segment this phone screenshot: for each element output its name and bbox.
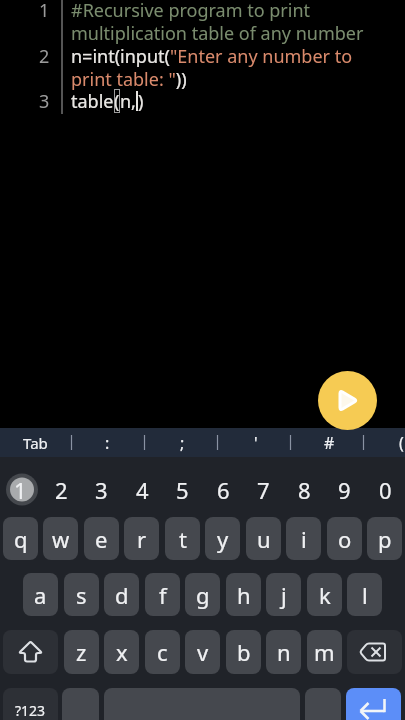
staticText: 3	[39, 89, 50, 113]
staticText: )	[138, 89, 144, 113]
button[interactable]: ?123	[3, 688, 58, 720]
button[interactable]: j	[266, 573, 301, 616]
button[interactable]: f	[145, 573, 180, 616]
staticText: o	[338, 524, 352, 554]
button[interactable]: o	[327, 517, 362, 560]
staticText: b	[237, 637, 251, 667]
button[interactable]: d	[104, 573, 139, 616]
staticText: q	[14, 524, 28, 554]
button[interactable]: s	[64, 573, 99, 616]
staticText: m	[314, 637, 335, 667]
button[interactable]: g	[185, 573, 220, 616]
button[interactable]: v	[185, 630, 220, 674]
button[interactable]: x	[104, 630, 139, 674]
staticText: k	[319, 580, 331, 610]
button[interactable]: :	[77, 428, 137, 457]
button[interactable]: n	[266, 630, 301, 674]
staticText: multiplication table of any number	[71, 21, 364, 45]
staticText: u	[257, 524, 271, 554]
button[interactable]	[62, 688, 99, 720]
staticText: t	[179, 524, 187, 554]
staticText: e	[95, 524, 108, 554]
staticText: 2	[39, 44, 50, 68]
staticText: Tab	[23, 433, 48, 453]
button[interactable]: q	[3, 517, 38, 560]
button[interactable]	[346, 688, 401, 720]
button[interactable]: 6	[203, 473, 244, 507]
staticText: y	[217, 524, 229, 554]
button[interactable]	[305, 688, 341, 720]
button[interactable]: 3	[81, 473, 122, 507]
button[interactable]: 9	[324, 473, 365, 507]
staticText: ;	[180, 432, 185, 454]
button[interactable]	[318, 371, 377, 430]
staticText: j	[281, 580, 287, 610]
button[interactable]: Tab	[5, 428, 65, 457]
staticText: 4	[136, 475, 149, 505]
staticText: c	[157, 637, 168, 667]
staticText: x	[116, 637, 128, 667]
staticText: 9	[338, 475, 351, 505]
staticText: (	[114, 89, 120, 113]
button[interactable]: m	[307, 630, 342, 674]
button[interactable]: r	[124, 517, 159, 560]
button[interactable]: l	[347, 573, 382, 616]
button[interactable]: w	[43, 517, 78, 560]
staticText: '	[254, 432, 258, 454]
staticText: print table: "))	[71, 67, 187, 91]
button[interactable]: y	[205, 517, 240, 560]
staticText: 7	[257, 475, 270, 505]
button[interactable]: 4	[122, 473, 163, 507]
staticText: r	[137, 524, 147, 554]
button[interactable]	[347, 630, 402, 674]
button[interactable]: 2	[41, 473, 82, 507]
button[interactable]: h	[226, 573, 261, 616]
staticText: n,	[120, 89, 136, 113]
button[interactable]: #	[299, 428, 359, 457]
staticText: i	[301, 524, 307, 554]
button[interactable]: c	[145, 630, 180, 674]
staticText: #Recursive program to print	[71, 0, 311, 22]
button[interactable]: u	[246, 517, 281, 560]
button[interactable]: 0	[365, 473, 405, 507]
staticText: 5	[176, 475, 189, 505]
button[interactable]: z	[64, 630, 99, 674]
button[interactable]: i	[286, 517, 321, 560]
staticText: ?123	[15, 701, 46, 720]
staticText: 2	[55, 475, 68, 505]
staticText: l	[362, 580, 368, 610]
staticText: 6	[217, 475, 230, 505]
staticText: n=int(input("Enter any number to	[71, 44, 353, 68]
button[interactable]: b	[226, 630, 261, 674]
staticText: h	[237, 580, 251, 610]
staticText: f	[159, 580, 167, 610]
button[interactable]: 5	[162, 473, 203, 507]
button[interactable]: 7	[243, 473, 284, 507]
button[interactable]: 8	[284, 473, 325, 507]
button[interactable]: a	[23, 573, 58, 616]
staticText: table	[71, 89, 114, 113]
button[interactable]: '	[226, 428, 286, 457]
staticText: 1	[39, 0, 50, 22]
button[interactable]	[3, 630, 58, 674]
staticText: 1	[14, 475, 27, 505]
button[interactable]: t	[165, 517, 200, 560]
staticText: a	[34, 580, 47, 610]
button[interactable]: (	[371, 428, 405, 457]
button[interactable]: ;	[152, 428, 212, 457]
button[interactable]: k	[307, 573, 342, 616]
staticText: #	[324, 432, 335, 454]
staticText: n	[277, 637, 291, 667]
staticText: w	[52, 524, 70, 554]
button[interactable]: p	[367, 517, 402, 560]
staticText: s	[76, 580, 87, 610]
button[interactable]: 1	[0, 473, 41, 507]
staticText: 3	[95, 475, 108, 505]
staticText: p	[378, 524, 392, 554]
button[interactable]: e	[84, 517, 119, 560]
staticText: d	[115, 580, 129, 610]
staticText: 0	[379, 475, 392, 505]
